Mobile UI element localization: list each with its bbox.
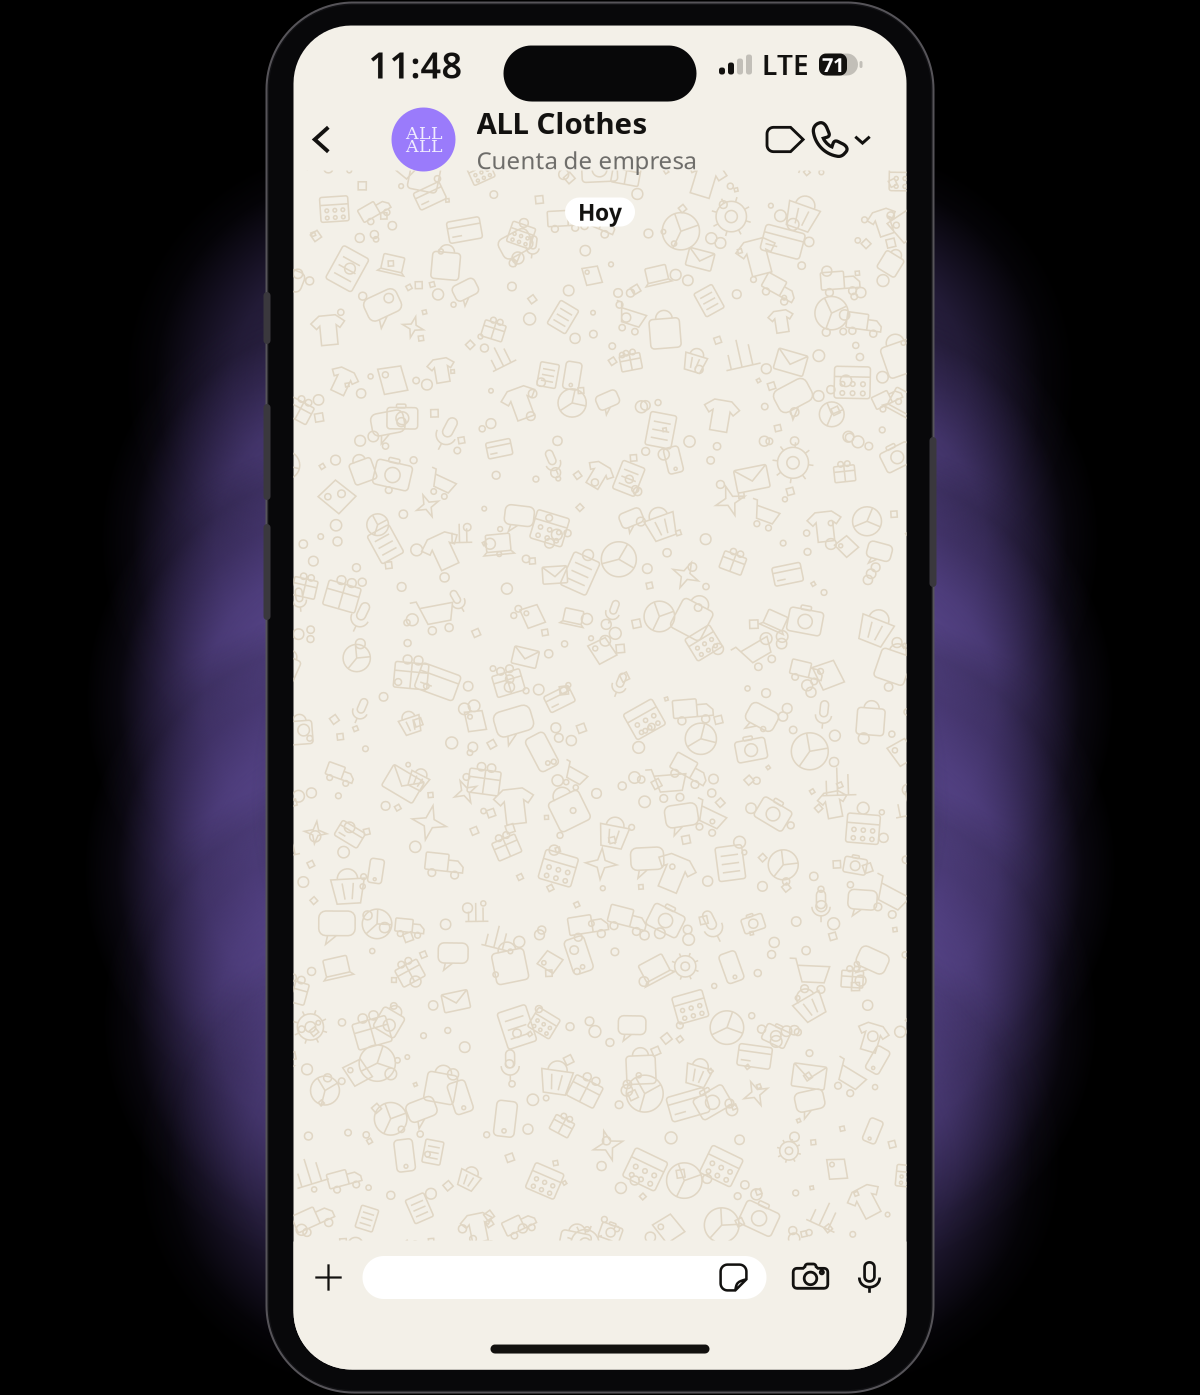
button[interactable]: Labels xyxy=(758,103,810,175)
button[interactable]: Call xyxy=(810,103,872,175)
button[interactable]: Hoy xyxy=(565,197,635,226)
button[interactable]: Back xyxy=(293,103,349,175)
button[interactable]: Voice message xyxy=(846,1248,892,1306)
button[interactable]: Camera xyxy=(784,1248,836,1306)
staticText: Cuenta de empresa xyxy=(476,144,696,176)
button[interactable] xyxy=(362,1256,766,1299)
staticText: LTE xyxy=(762,46,809,83)
button[interactable]: Attach xyxy=(302,1248,354,1306)
button[interactable]: ALL xyxy=(391,103,696,175)
staticText: ALL Clothes xyxy=(476,103,647,142)
staticText: 71 xyxy=(822,51,844,78)
staticText: 11:48 xyxy=(368,41,462,88)
staticText: ALL xyxy=(406,123,443,143)
staticText: ALL xyxy=(406,136,443,156)
staticText: Hoy xyxy=(578,197,622,227)
